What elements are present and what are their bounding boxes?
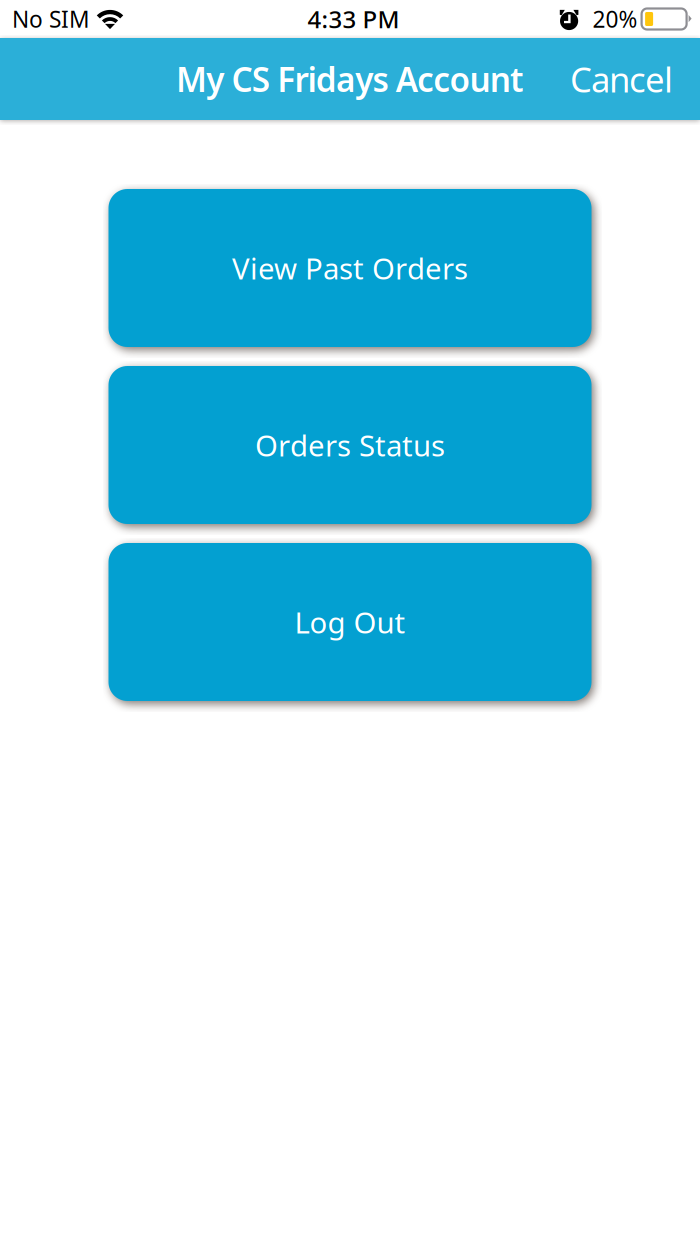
button[interactable]: View Past Orders (108, 189, 591, 347)
staticText: Log Out (294, 602, 405, 641)
staticText: Cancel (570, 56, 673, 102)
button[interactable]: Orders Status (108, 366, 591, 524)
staticText: View Past Orders (232, 248, 468, 287)
button[interactable]: Cancel (556, 40, 687, 118)
staticText: My CS Fridays Account (176, 57, 524, 101)
staticText: No SIM (12, 4, 90, 34)
staticText: Orders Status (255, 425, 445, 464)
staticText: 20% (593, 4, 638, 34)
staticText: 4:33 PM (307, 3, 399, 35)
button[interactable]: Log Out (108, 543, 591, 701)
